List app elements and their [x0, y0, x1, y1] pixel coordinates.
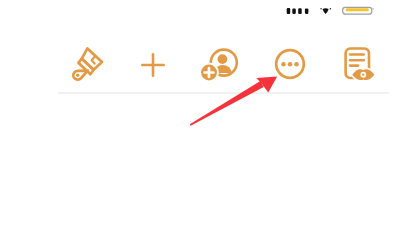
- button[interactable]: Add person: [199, 45, 239, 85]
- button[interactable]: Add: [134, 46, 172, 84]
- button[interactable]: More options: [273, 47, 307, 81]
- button[interactable]: Preview: [342, 46, 378, 82]
- button[interactable]: Brush: [69, 44, 107, 82]
